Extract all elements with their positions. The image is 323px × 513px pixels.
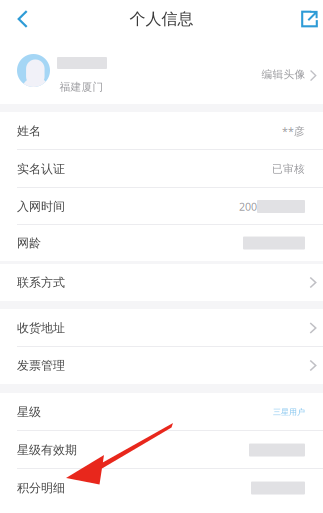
staticText: 发票管理 (17, 358, 65, 373)
staticText: 个人信息 (129, 9, 193, 29)
button[interactable]: 姓名 (0, 112, 323, 150)
staticText: 已审核 (272, 162, 305, 175)
button[interactable]: 福建厦门 (0, 38, 323, 104)
staticText: 实名认证 (17, 162, 65, 176)
button[interactable]: Open in browser (289, 0, 323, 38)
button[interactable]: 收货地址 (0, 309, 323, 347)
button[interactable]: 入网时间 (0, 188, 323, 225)
staticText: 联系方式 (17, 275, 65, 290)
staticText: **彦 (282, 124, 305, 138)
button[interactable]: 网龄 (0, 225, 323, 261)
staticText: 入网时间 (17, 199, 65, 214)
staticText: 三星用户 (273, 407, 305, 417)
staticText: 编辑头像 (261, 68, 305, 81)
button[interactable]: 实名认证 (0, 150, 323, 188)
button[interactable]: 星级有效期 (0, 431, 323, 469)
staticText: 姓名 (17, 124, 41, 138)
staticText: 福建厦门 (59, 80, 103, 94)
staticText: 收货地址 (17, 321, 65, 335)
button[interactable]: Back (0, 0, 40, 38)
staticText: 200 (239, 199, 257, 214)
button[interactable]: 星级 (0, 393, 323, 431)
staticText: 星级 (17, 405, 41, 419)
staticText: 网龄 (17, 236, 41, 250)
button[interactable]: 联系方式 (0, 264, 323, 301)
button[interactable]: 积分明细 (0, 469, 323, 507)
staticText: 星级有效期 (17, 443, 77, 457)
staticText: 积分明细 (17, 481, 65, 495)
button[interactable]: 发票管理 (0, 347, 323, 384)
